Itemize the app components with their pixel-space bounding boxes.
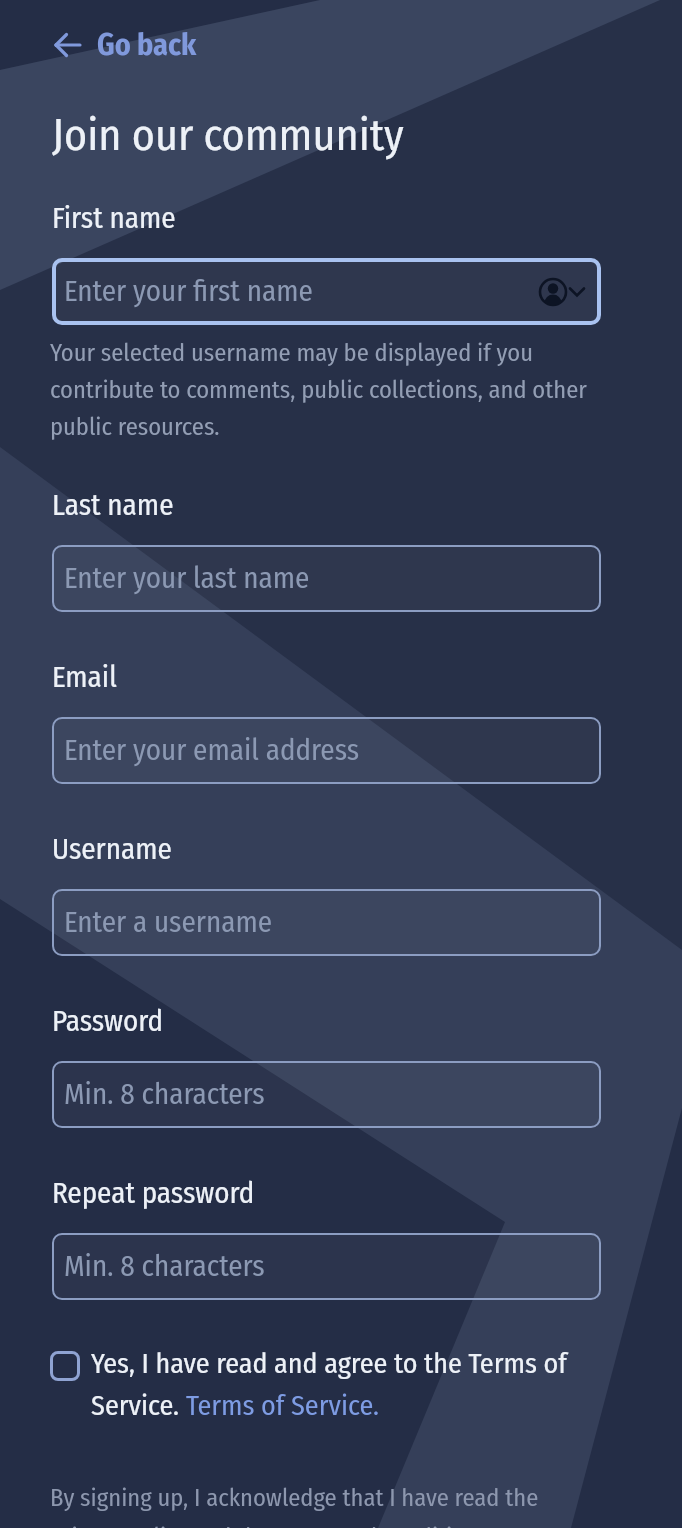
staticText: Min. 8 characters [64,1077,265,1112]
staticText: privacy policy and the terms and conditi… [50,1522,494,1528]
staticText: Service. [91,1389,186,1423]
staticText: Password [52,1004,164,1039]
staticText: Username [52,832,172,867]
staticText: Repeat password [52,1176,255,1211]
staticText: Last name [52,488,174,523]
button[interactable]: Go back [52,27,197,63]
staticText: First name [52,201,176,236]
staticText: Enter your last name [64,561,310,596]
button[interactable]: Enter your first name [52,258,601,325]
staticText: Yes, I have read and agree to the Terms … [91,1347,567,1381]
button[interactable]: Enter a username [52,889,601,956]
staticText: Join our community [52,109,404,162]
staticText: Enter your first name [64,274,313,309]
button[interactable]: Terms of Service. [186,1389,379,1423]
staticText: Email [52,660,117,695]
button[interactable]: Enter your email address [52,717,601,784]
staticText: Go back [97,27,197,63]
staticText: By signing up, I acknowledge that I have… [50,1483,539,1512]
button[interactable] [50,1351,80,1381]
staticText: Your selected username may be displayed … [50,338,587,441]
staticText: Min. 8 characters [64,1249,265,1284]
button[interactable]: Min. 8 characters [52,1061,601,1128]
button[interactable]: Enter your last name [52,545,601,612]
button[interactable]: Min. 8 characters [52,1233,601,1300]
staticText: Enter your email address [64,733,360,768]
staticText: Enter a username [64,905,273,940]
